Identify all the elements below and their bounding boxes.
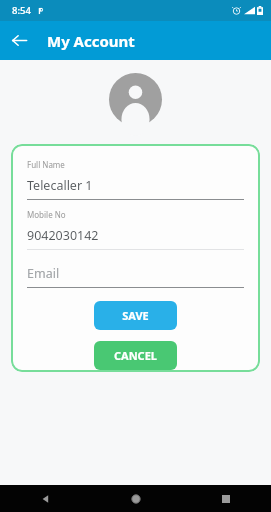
staticText: My Account: [47, 31, 135, 51]
staticText: 8:54: [12, 4, 31, 17]
staticText: Email: [27, 265, 60, 282]
button[interactable]: Back: [0, 21, 39, 60]
button[interactable]: Back: [0, 485, 91, 512]
button[interactable]: SAVE: [94, 301, 177, 330]
button[interactable]: Recent apps: [181, 485, 271, 512]
staticText: Full Name: [27, 159, 65, 170]
button[interactable]: Home: [91, 485, 181, 512]
staticText: SAVE: [122, 308, 149, 323]
staticText: Mobile No: [27, 209, 66, 220]
button[interactable]: CANCEL: [94, 341, 177, 370]
staticText: CANCEL: [114, 348, 157, 363]
staticText: Telecaller 1: [27, 177, 93, 194]
staticText: 9042030142: [27, 227, 99, 244]
